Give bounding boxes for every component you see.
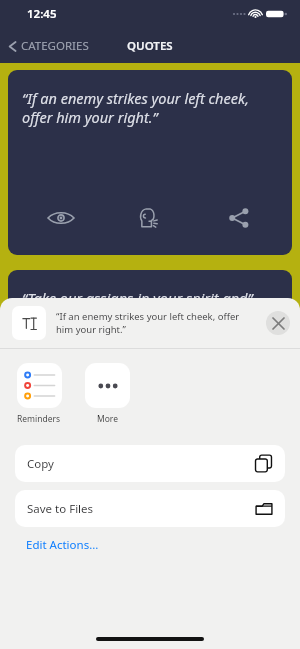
staticText: “Take our assigns in your spirit and” (22, 288, 253, 308)
staticText: 12:45 (27, 6, 57, 22)
staticText: “If an enemy strikes your left cheek, of… (56, 310, 258, 336)
staticText: CATEGORIES (21, 38, 89, 54)
button[interactable]: Reminders (14, 363, 64, 425)
button[interactable]: Mark as read (46, 403, 76, 433)
button[interactable]: Share (224, 203, 254, 233)
button[interactable]: Speak (135, 203, 165, 233)
staticText: Edit Actions… (26, 537, 99, 553)
staticText: Copy (27, 456, 254, 472)
staticText: Save to Files (27, 501, 255, 517)
button[interactable]: Edit Actions… (26, 537, 300, 553)
button[interactable]: Mark as read (46, 203, 76, 233)
button[interactable]: Save to Files (15, 490, 285, 527)
staticText: “If an enemy strikes your left cheek, of… (22, 88, 276, 127)
button[interactable]: Copy (15, 445, 285, 482)
button[interactable]: More (82, 363, 132, 425)
staticText: Reminders (17, 413, 61, 425)
staticText: QUOTES (127, 38, 173, 54)
button[interactable]: “Take our assigns in your spirit and” (8, 270, 292, 455)
button[interactable]: Close (266, 311, 290, 335)
staticText: More (97, 413, 118, 425)
button[interactable]: CATEGORIES (7, 38, 89, 54)
button[interactable]: “If an enemy strikes your left cheek, of… (8, 70, 292, 255)
